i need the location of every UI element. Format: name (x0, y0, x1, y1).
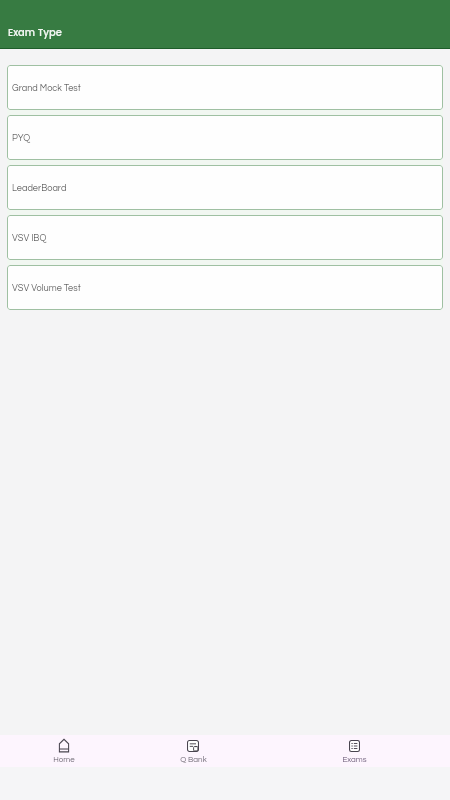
button[interactable]: Grand Mock Test (7, 65, 443, 110)
button[interactable]: Home (0, 735, 128, 767)
staticText: LeaderBoard (12, 183, 67, 192)
staticText: Q Bank (180, 755, 207, 763)
button[interactable]: PYQ (7, 115, 443, 160)
staticText: VSV Volume Test (12, 283, 81, 292)
other: Exams (349, 739, 360, 752)
button[interactable]: Question Bank (128, 735, 258, 767)
other: Home (59, 739, 69, 752)
button[interactable]: LeaderBoard (7, 165, 443, 210)
staticText: Home (53, 755, 75, 763)
staticText: VSV IBQ (12, 233, 47, 242)
button[interactable]: Exams (258, 735, 450, 767)
button[interactable]: VSV Volume Test (7, 265, 443, 310)
button[interactable]: VSV IBQ (7, 215, 443, 260)
other: Question Bank (187, 739, 199, 752)
staticText: Exam Type (8, 26, 62, 40)
staticText: PYQ (12, 133, 31, 142)
staticText: Grand Mock Test (12, 83, 81, 92)
staticText: Exams (342, 755, 367, 763)
